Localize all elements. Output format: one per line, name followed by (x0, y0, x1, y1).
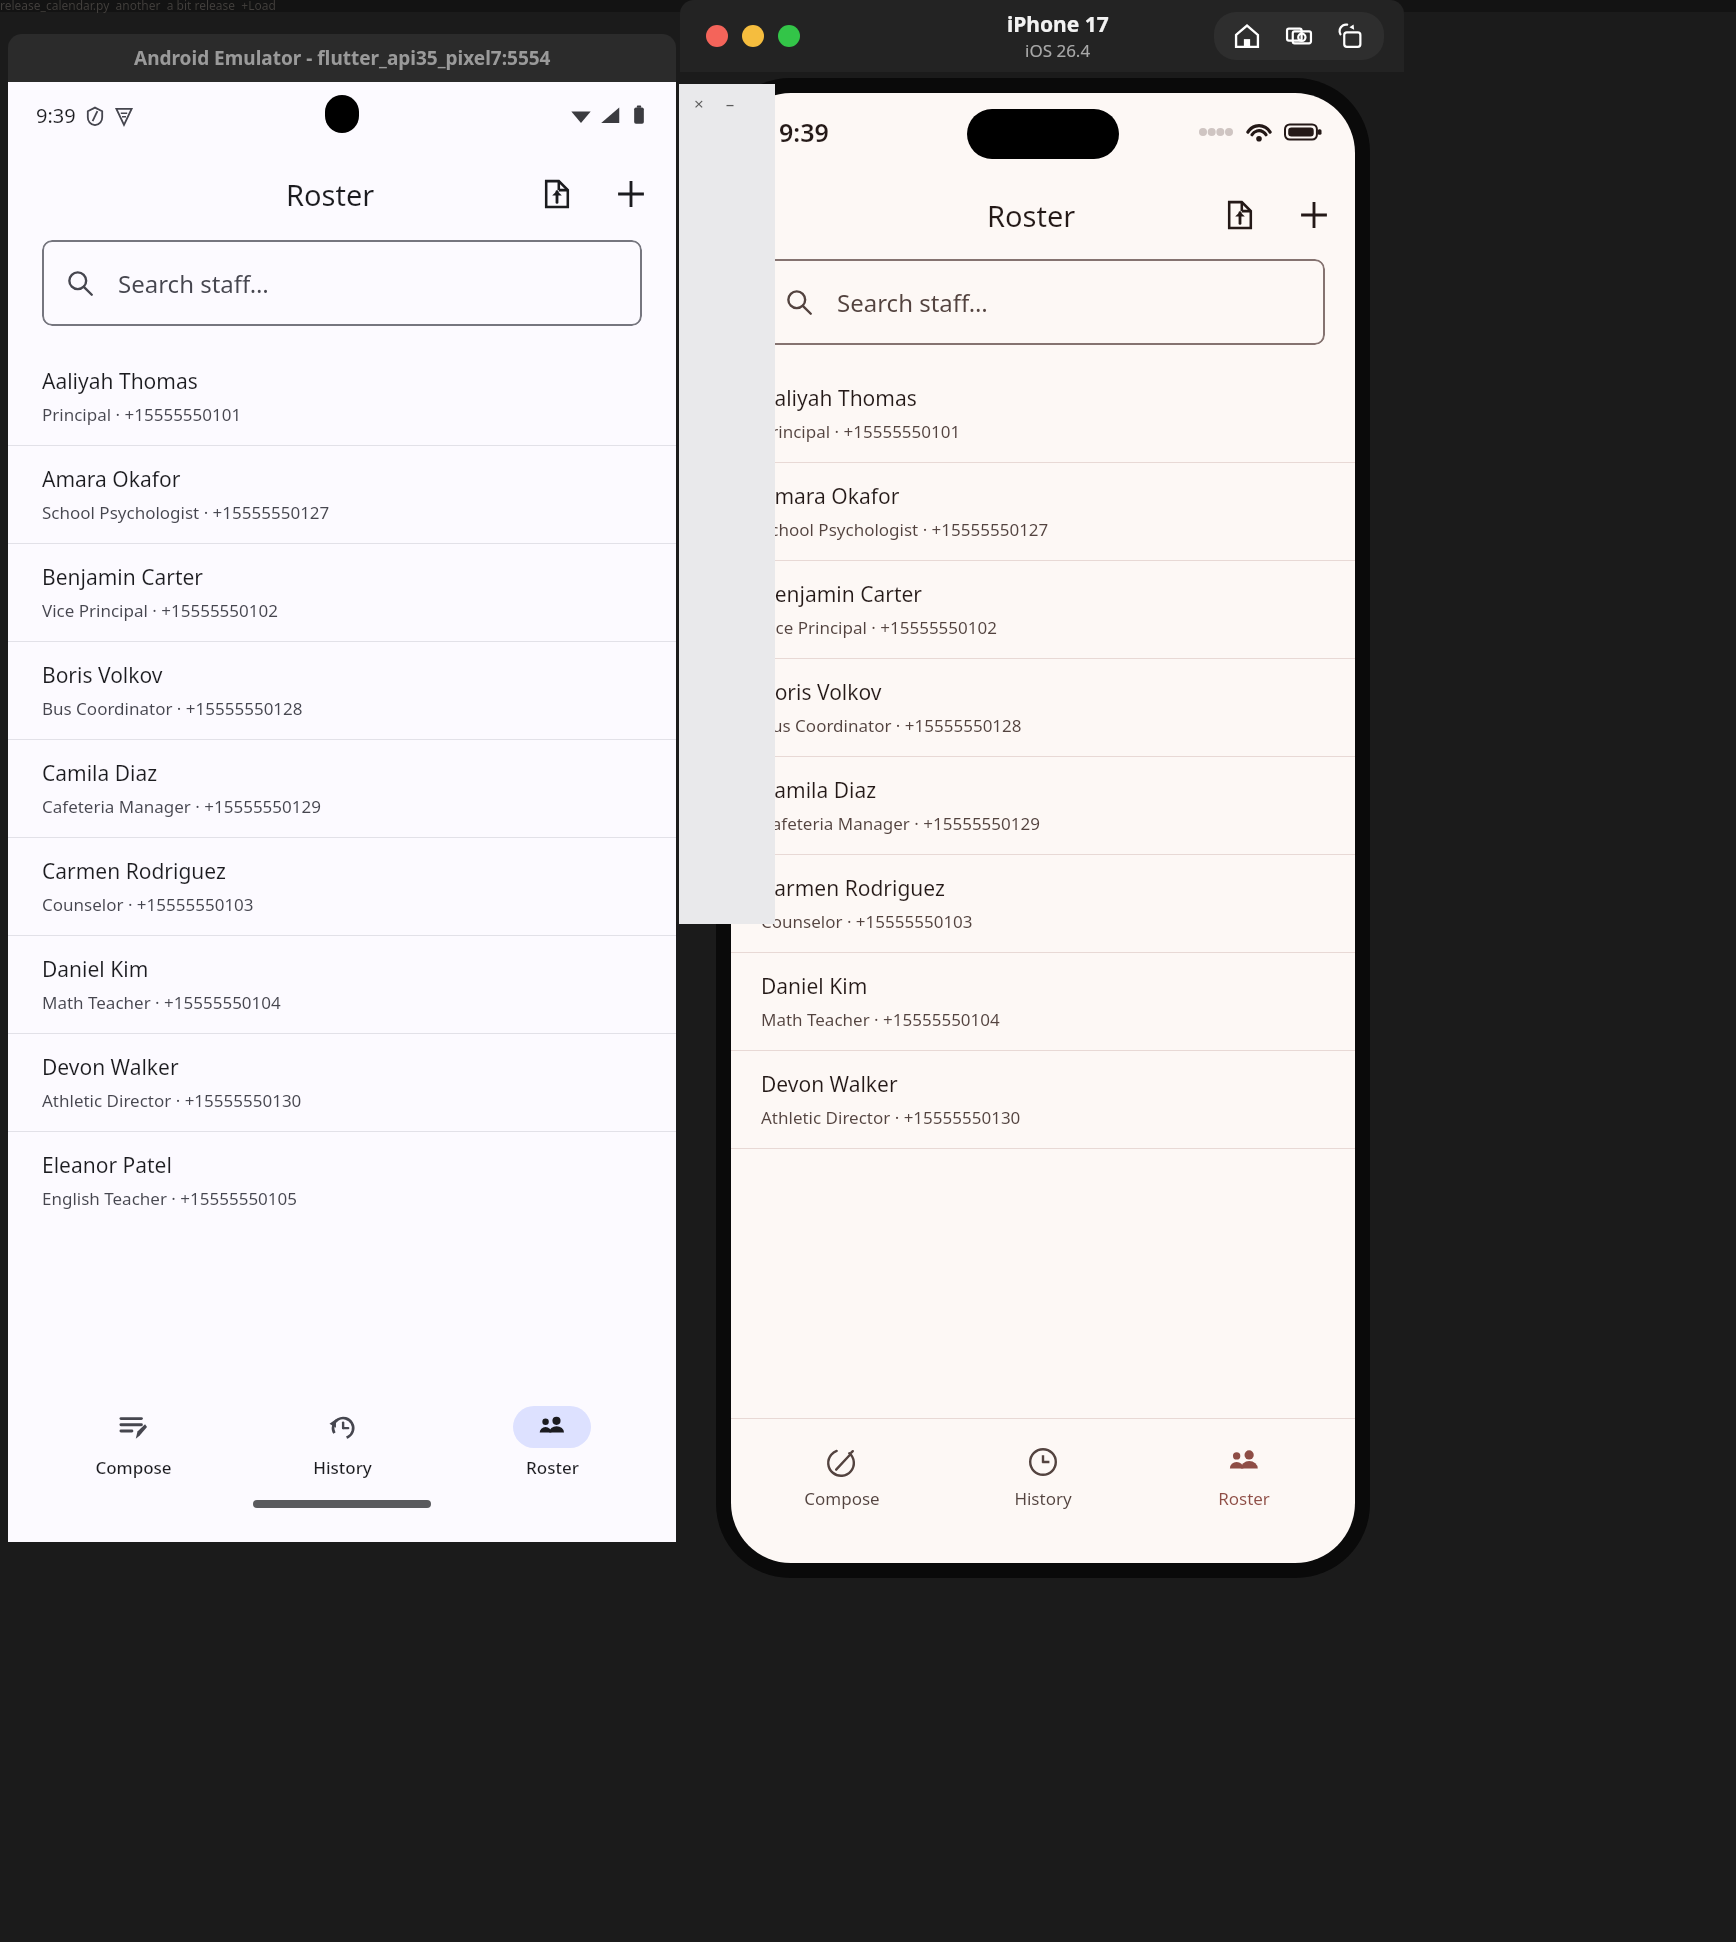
staticText: × – (694, 92, 735, 115)
staticText: Devon Walker (42, 1053, 179, 1082)
staticText: Roster (1218, 1487, 1270, 1510)
staticText: Athletic Director · +15555550130 (42, 1089, 302, 1112)
staticText: Devon Walker (761, 1070, 898, 1099)
staticText: Daniel Kim (761, 972, 868, 1001)
staticText: Roster (286, 175, 375, 214)
button[interactable]: Boris Volkov (731, 659, 1355, 756)
button[interactable]: Boris Volkov (8, 642, 676, 739)
staticText: 9:39 (779, 115, 829, 149)
button[interactable]: Eleanor Patel (8, 1132, 676, 1229)
staticText: Principal · +15555550101 (761, 420, 961, 443)
staticText: iPhone 17 (1007, 10, 1109, 39)
staticText: Camila Diaz (761, 776, 877, 805)
button[interactable]: Rotate (1334, 19, 1368, 53)
staticText: Search staff… (837, 286, 988, 319)
staticText: Android Emulator - flutter_api35_pixel7:… (134, 45, 551, 71)
button[interactable]: Aaliyah Thomas (731, 365, 1355, 462)
staticText: Amara Okafor (761, 482, 900, 511)
button[interactable]: Carmen Rodriguez (8, 838, 676, 935)
staticText: Boris Volkov (42, 661, 163, 690)
button[interactable]: Screenshot (1282, 19, 1316, 53)
staticText: Cafeteria Manager · +15555550129 (42, 795, 321, 818)
staticText: Vice Principal · +15555550102 (42, 599, 278, 622)
button[interactable]: Home (1230, 19, 1264, 53)
button[interactable]: Import roster file (530, 167, 584, 221)
button[interactable]: Benjamin Carter (731, 561, 1355, 658)
staticText: Search staff… (118, 267, 269, 300)
button[interactable]: Roster (467, 1402, 637, 1483)
staticText: Bus Coordinator · +15555550128 (761, 714, 1022, 737)
button[interactable]: Amara Okafor (731, 463, 1355, 560)
staticText: Aaliyah Thomas (42, 367, 198, 396)
staticText: Eleanor Patel (42, 1151, 172, 1180)
button[interactable]: Search staff (761, 259, 1325, 345)
button[interactable]: Import roster file (1213, 188, 1267, 242)
button[interactable]: Camila Diaz (8, 740, 676, 837)
button[interactable]: Amara Okafor (8, 446, 676, 543)
staticText: Vice Principal · +15555550102 (761, 616, 997, 639)
button[interactable]: Compose (48, 1402, 218, 1483)
staticText: 9:39 (36, 102, 76, 129)
staticText: Bus Coordinator · +15555550128 (42, 697, 303, 720)
button[interactable] (742, 25, 764, 47)
staticText: Compose (804, 1487, 880, 1510)
button[interactable]: Devon Walker (8, 1034, 676, 1131)
button[interactable]: Benjamin Carter (8, 544, 676, 641)
button[interactable]: Camila Diaz (731, 757, 1355, 854)
staticText: Counselor · +15555550103 (761, 910, 973, 933)
button[interactable]: Add staff member (1287, 188, 1341, 242)
staticText: Carmen Rodriguez (761, 874, 945, 903)
button[interactable] (778, 25, 800, 47)
staticText: Counselor · +15555550103 (42, 893, 254, 916)
staticText: release_calendar.py another a bit releas… (0, 0, 276, 13)
staticText: English Teacher · +15555550105 (42, 1187, 297, 1210)
staticText: Benjamin Carter (761, 580, 922, 609)
button[interactable] (706, 25, 728, 47)
staticText: Camila Diaz (42, 759, 158, 788)
button[interactable]: Daniel Kim (731, 953, 1355, 1050)
staticText: Carmen Rodriguez (42, 857, 226, 886)
staticText: Aaliyah Thomas (761, 384, 917, 413)
button[interactable]: Search staff (42, 240, 642, 326)
button[interactable]: Carmen Rodriguez (731, 855, 1355, 952)
staticText: Compose (95, 1456, 172, 1479)
button[interactable]: Daniel Kim (8, 936, 676, 1033)
staticText: Athletic Director · +15555550130 (761, 1106, 1021, 1129)
staticText: Cafeteria Manager · +15555550129 (761, 812, 1040, 835)
staticText: Roster (987, 196, 1076, 235)
button[interactable]: Compose (752, 1442, 932, 1514)
staticText: Math Teacher · +15555550104 (761, 1008, 1000, 1031)
staticText: History (313, 1456, 372, 1479)
button[interactable]: History (953, 1442, 1133, 1514)
staticText: Roster (526, 1456, 579, 1479)
button[interactable]: Add staff member (604, 167, 658, 221)
staticText: iOS 26.4 (1025, 39, 1091, 62)
staticText: Daniel Kim (42, 955, 149, 984)
button[interactable]: Devon Walker (731, 1051, 1355, 1148)
button[interactable]: Aaliyah Thomas (8, 348, 676, 445)
staticText: School Psychologist · +15555550127 (42, 501, 330, 524)
staticText: History (1014, 1487, 1072, 1510)
staticText: School Psychologist · +15555550127 (761, 518, 1049, 541)
staticText: Math Teacher · +15555550104 (42, 991, 281, 1014)
staticText: Principal · +15555550101 (42, 403, 242, 426)
button[interactable]: History (257, 1402, 427, 1483)
staticText: Boris Volkov (761, 678, 882, 707)
staticText: Benjamin Carter (42, 563, 203, 592)
staticText: Amara Okafor (42, 465, 181, 494)
button[interactable]: Roster (1154, 1442, 1334, 1514)
